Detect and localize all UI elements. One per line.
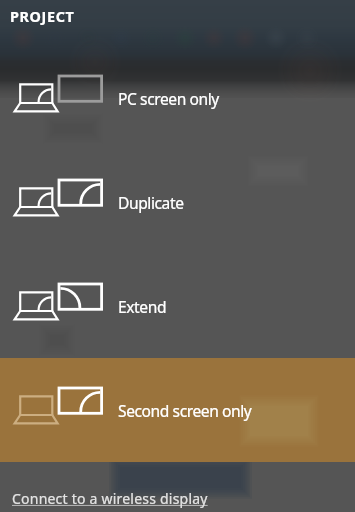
button[interactable]: Connect to a wireless display xyxy=(0,484,355,512)
button[interactable]: Duplicate xyxy=(0,150,355,254)
staticText: Duplicate xyxy=(118,192,184,213)
button[interactable]: Second screen only xyxy=(0,358,355,462)
staticText: Connect to a wireless display xyxy=(12,489,208,508)
staticText: Extend xyxy=(118,296,167,317)
staticText: PC screen only xyxy=(118,88,219,109)
button[interactable]: PC screen only xyxy=(0,46,355,150)
button[interactable]: Extend xyxy=(0,254,355,358)
staticText: Second screen only xyxy=(118,400,252,421)
staticText: PROJECT xyxy=(10,7,75,27)
